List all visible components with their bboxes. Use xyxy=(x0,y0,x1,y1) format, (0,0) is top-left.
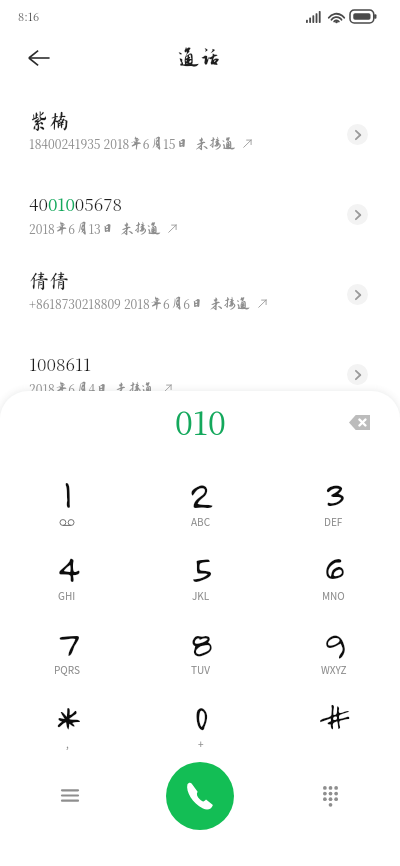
button[interactable]: 1 xyxy=(0,470,134,544)
button[interactable]: 6 xyxy=(267,544,400,618)
button[interactable]: Call details xyxy=(347,204,368,225)
staticText: 倩倩 xyxy=(29,270,69,290)
button[interactable]: 8 xyxy=(134,618,267,692)
button[interactable]: 紫楠 xyxy=(0,94,400,174)
staticText: 010 xyxy=(175,398,226,444)
button[interactable]: Call xyxy=(166,762,234,830)
staticText: # xyxy=(317,692,350,740)
button[interactable]: Call details xyxy=(347,124,368,145)
button[interactable]: 7 xyxy=(0,618,134,692)
staticText: 6 xyxy=(324,544,343,592)
staticText: PQRS xyxy=(54,662,80,676)
button[interactable]: 2 xyxy=(134,470,267,544)
button[interactable]: Back xyxy=(20,39,58,77)
button[interactable]: * xyxy=(0,692,134,766)
staticText: + xyxy=(198,736,204,750)
staticText: +8618730218809 2018年6月6日 未接通 xyxy=(29,295,251,312)
button[interactable]: 1008611 xyxy=(0,334,400,414)
staticText: 紫楠 xyxy=(29,110,69,130)
staticText: 7 xyxy=(57,618,78,666)
button[interactable]: 4 xyxy=(0,544,134,618)
staticText: JKL xyxy=(192,588,210,602)
staticText: 1 xyxy=(63,470,71,518)
staticText: 1008611 xyxy=(29,351,91,375)
button[interactable]: 倩倩 xyxy=(0,254,400,334)
staticText: 8:16 xyxy=(18,8,40,24)
button[interactable]: 0 xyxy=(134,692,267,766)
staticText: 0 xyxy=(194,692,207,740)
button[interactable]: Call details xyxy=(347,364,368,385)
staticText: 2018年6月13日 未接通 xyxy=(29,220,161,237)
button[interactable]: 3 xyxy=(267,470,400,544)
staticText: 2018年6月4日 未接通 xyxy=(29,380,156,397)
staticText: 2 xyxy=(189,470,212,518)
staticText: 5 xyxy=(191,544,211,592)
staticText: DEF xyxy=(324,514,343,528)
button[interactable]: 5 xyxy=(134,544,267,618)
button[interactable]: 4001005678 xyxy=(0,174,400,254)
staticText: 通话 xyxy=(178,45,222,69)
button[interactable]: Backspace xyxy=(340,403,378,441)
staticText: 3 xyxy=(324,470,344,518)
button[interactable]: Call details xyxy=(347,284,368,305)
staticText: 18400241935 2018年6月15日 未接通 xyxy=(29,135,236,152)
staticText: WXYZ xyxy=(321,662,347,676)
staticText: 4001005678 xyxy=(29,191,123,215)
staticText: TUV xyxy=(191,662,210,676)
staticText: , xyxy=(66,736,69,750)
staticText: MNO xyxy=(322,588,345,602)
staticText: 4 xyxy=(57,544,78,592)
button[interactable]: Call log menu xyxy=(50,775,90,815)
staticText: 9 xyxy=(323,618,345,666)
button[interactable]: Hide keypad xyxy=(310,775,350,815)
staticText: GHI xyxy=(58,588,76,602)
button[interactable]: # xyxy=(267,692,400,766)
staticText: * xyxy=(55,692,79,740)
staticText: ABC xyxy=(191,514,211,528)
staticText: 8 xyxy=(190,618,211,666)
button[interactable]: 9 xyxy=(267,618,400,692)
